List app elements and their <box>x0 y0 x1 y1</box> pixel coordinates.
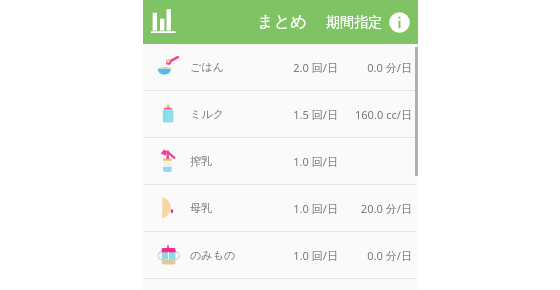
button[interactable]: 母乳 <box>143 185 418 231</box>
button[interactable]: 期間指定 <box>321 7 388 37</box>
button[interactable]: Info <box>387 10 411 34</box>
staticText: 0.0 分/日 <box>338 248 412 263</box>
staticText: のみもの <box>190 248 243 262</box>
button[interactable]: のみもの <box>143 232 418 278</box>
staticText: 160.0 cc/日 <box>338 107 412 122</box>
staticText: 1.0 回/日 <box>243 248 338 263</box>
button[interactable]: ミルク <box>143 91 418 137</box>
staticText: まとめ <box>257 11 308 32</box>
button[interactable]: 搾乳 <box>143 138 418 184</box>
staticText: ごはん <box>190 60 243 74</box>
staticText: 母乳 <box>190 201 243 215</box>
staticText: 1.0 回/日 <box>243 154 338 169</box>
staticText: 1.5 回/日 <box>243 107 338 122</box>
button[interactable]: Chart <box>146 4 180 38</box>
button[interactable]: ごはん <box>143 44 418 90</box>
staticText: 0.0 分/日 <box>338 60 412 75</box>
staticText: 2.0 回/日 <box>243 60 338 75</box>
staticText: ミルク <box>190 107 243 121</box>
staticText: 期間指定 <box>326 13 383 31</box>
staticText: 1.0 回/日 <box>243 201 338 216</box>
staticText: 20.0 分/日 <box>338 201 412 216</box>
staticText: 搾乳 <box>190 154 243 168</box>
